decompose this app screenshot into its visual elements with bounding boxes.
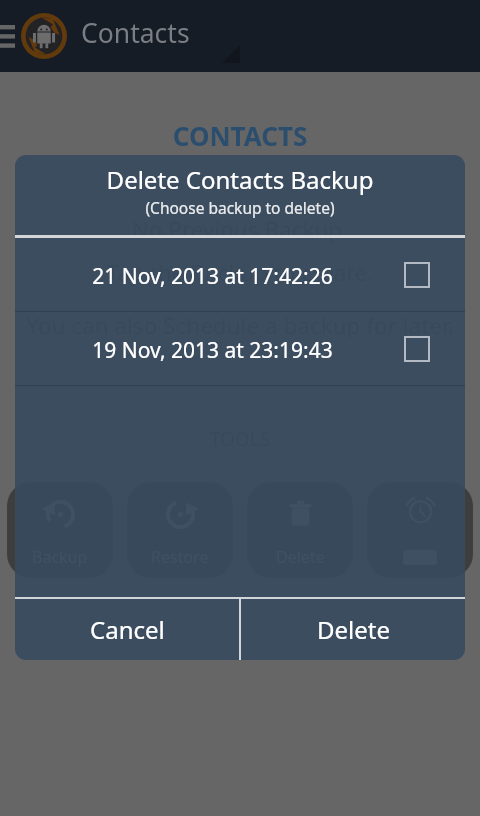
staticText: CONTACTS <box>0 118 480 153</box>
staticText: You can also Schedule a backup for later… <box>0 310 480 341</box>
staticText: Contacts <box>81 15 190 51</box>
staticText: TOOLS <box>0 426 480 452</box>
staticText: Delete <box>317 613 390 646</box>
staticText: Delete Contacts Backup <box>15 163 465 196</box>
button[interactable]: Open navigation menu <box>0 12 20 60</box>
staticText: (Choose backup to delete) <box>15 197 465 218</box>
button[interactable]: Cancel <box>15 599 239 660</box>
button[interactable] <box>367 482 473 578</box>
button[interactable]: 21 Nov, 2013 at 17:42:26 <box>15 238 465 311</box>
staticText: 21 Nov, 2013 at 17:42:26 <box>15 262 410 291</box>
staticText: Cancel <box>90 613 165 646</box>
button[interactable]: 19 Nov, 2013 at 23:19:43 <box>15 312 465 385</box>
staticText: Tap the Backup to create. <box>0 257 480 288</box>
button[interactable]: Delete <box>241 599 465 660</box>
staticText: No Previous Backup. <box>0 214 480 245</box>
staticText: 19 Nov, 2013 at 23:19:43 <box>15 336 410 365</box>
button[interactable]: Backup <box>7 482 113 578</box>
